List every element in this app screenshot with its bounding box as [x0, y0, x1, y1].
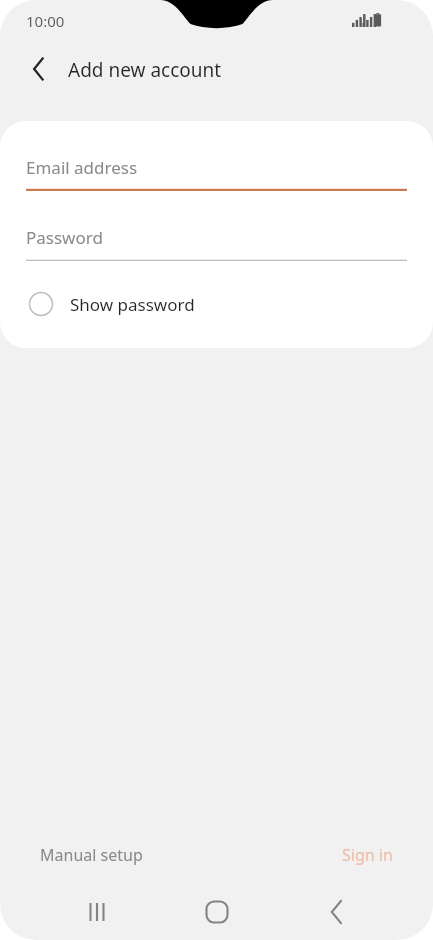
staticText: Add new account — [68, 57, 222, 83]
button[interactable]: Back — [309, 884, 365, 940]
button[interactable]: Recent apps — [69, 884, 125, 940]
button[interactable]: Back — [17, 47, 61, 91]
staticText: Show password — [70, 293, 195, 316]
button[interactable]: Email address — [26, 141, 407, 191]
staticText: Sign in — [342, 844, 393, 866]
button[interactable]: Manual setup — [40, 844, 143, 866]
button[interactable]: Sign in — [342, 844, 393, 866]
staticText: Password — [26, 226, 103, 249]
staticText: Email address — [26, 156, 138, 179]
staticText: 10:00 — [26, 11, 65, 31]
button[interactable]: Show password — [22, 283, 195, 325]
button[interactable]: Password — [26, 211, 407, 261]
staticText: Manual setup — [40, 844, 143, 866]
button[interactable]: Home — [189, 884, 245, 940]
